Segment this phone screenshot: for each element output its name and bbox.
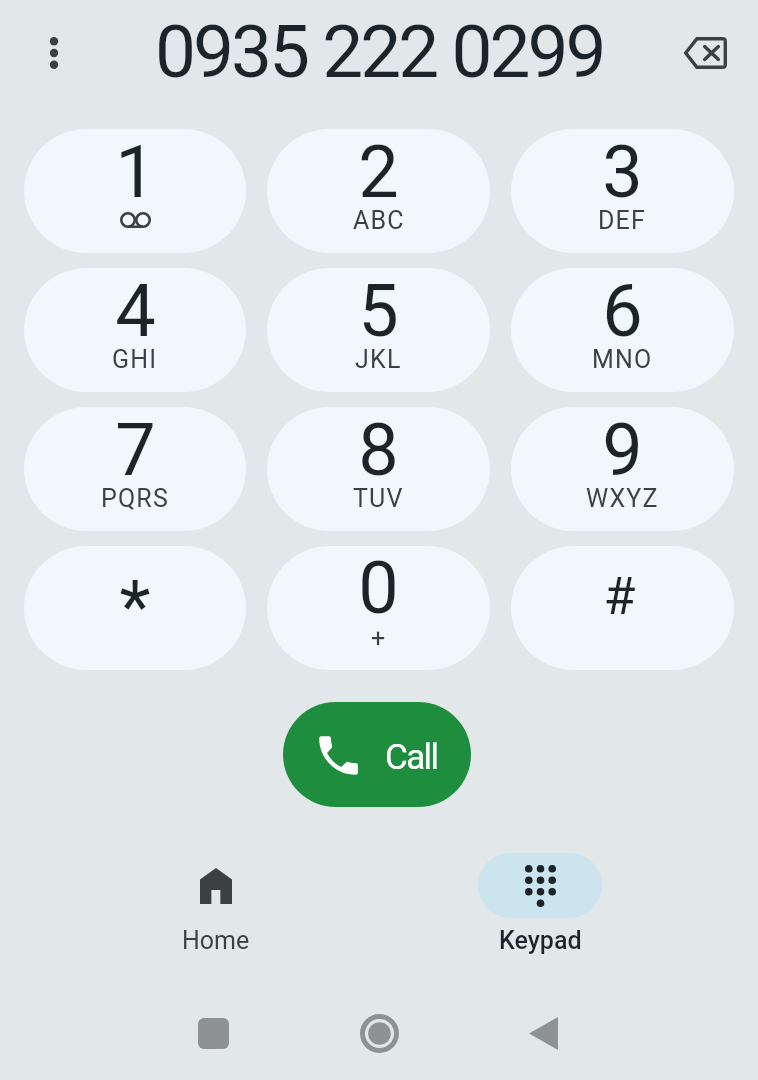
button[interactable]: Backspace xyxy=(673,21,737,85)
button[interactable]: Home xyxy=(349,1003,409,1063)
staticText: TUV xyxy=(353,484,404,513)
staticText: # xyxy=(603,566,636,627)
staticText: Home xyxy=(182,926,250,955)
staticText: ABC xyxy=(353,206,405,235)
staticText: 4 xyxy=(115,269,156,353)
button[interactable]: 7 xyxy=(24,407,246,531)
staticText: + xyxy=(371,624,387,653)
staticText: JKL xyxy=(355,345,402,374)
staticText: 5 xyxy=(358,269,399,353)
button[interactable]: Home xyxy=(154,853,278,918)
staticText: 1 xyxy=(115,130,156,214)
button[interactable]: * xyxy=(24,546,246,670)
staticText: 8 xyxy=(358,408,399,492)
staticText: MNO xyxy=(592,345,653,374)
button[interactable]: 6 xyxy=(511,268,734,392)
staticText: 9 xyxy=(602,408,643,492)
button[interactable]: Keypad xyxy=(478,853,602,918)
button[interactable]: 3 xyxy=(511,129,734,253)
button[interactable]: 5 xyxy=(267,268,490,392)
button[interactable]: Recent apps xyxy=(183,1003,243,1063)
staticText: 2 xyxy=(358,130,399,214)
staticText: GHI xyxy=(112,345,158,374)
button[interactable]: More options xyxy=(24,23,84,83)
staticText: Keypad xyxy=(499,926,582,955)
button[interactable]: # xyxy=(511,546,734,670)
staticText: * xyxy=(119,565,151,649)
button[interactable]: 4 xyxy=(24,268,246,392)
button[interactable]: 9 xyxy=(511,407,734,531)
button[interactable]: 8 xyxy=(267,407,490,531)
staticText: 0935 222 0299 xyxy=(155,9,604,95)
staticText: Call xyxy=(385,737,438,778)
staticText: 0 xyxy=(358,546,399,630)
staticText: PQRS xyxy=(101,484,170,513)
staticText: 6 xyxy=(602,269,643,353)
button[interactable]: Back xyxy=(513,1003,573,1063)
button[interactable]: 0 xyxy=(267,546,490,670)
staticText: 3 xyxy=(602,130,643,214)
staticText: DEF xyxy=(598,206,647,235)
button[interactable]: 1 xyxy=(24,129,246,253)
button[interactable]: Call xyxy=(283,702,471,807)
button[interactable]: 2 xyxy=(267,129,490,253)
staticText: WXYZ xyxy=(586,484,659,513)
staticText: 7 xyxy=(115,408,156,492)
